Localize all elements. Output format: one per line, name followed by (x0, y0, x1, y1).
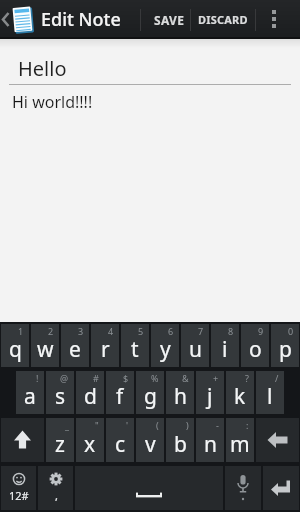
button[interactable]: k (226, 371, 254, 414)
button[interactable]: d (76, 371, 104, 414)
staticText: 7 (198, 325, 204, 337)
staticText: / (275, 372, 279, 384)
staticText: i (222, 335, 228, 364)
staticText: ) (186, 419, 189, 431)
staticText: SAVE (154, 12, 185, 28)
staticText: + (213, 372, 219, 384)
staticText: b (174, 430, 187, 459)
button[interactable]: 12# (1, 466, 36, 510)
button[interactable]: DISCARD (191, 0, 255, 39)
button[interactable]: , (38, 466, 73, 510)
staticText: g (144, 382, 157, 411)
staticText: _ (65, 419, 69, 431)
button[interactable]: o (241, 324, 269, 367)
staticText: @ (60, 372, 69, 384)
staticText: s (55, 382, 66, 411)
button[interactable] (256, 0, 300, 39)
staticText: j (207, 382, 213, 411)
staticText: ( (156, 419, 159, 431)
staticText: 5 (138, 325, 144, 337)
button[interactable]: y (151, 324, 179, 367)
staticText: DISCARD (198, 12, 248, 27)
button[interactable]: q (1, 324, 29, 367)
staticText: v (145, 430, 156, 459)
button[interactable]: j (196, 371, 224, 414)
staticText: r (101, 335, 110, 364)
button[interactable]: p (271, 324, 299, 367)
button[interactable]: g (136, 371, 164, 414)
staticText: Hi world!!!! (12, 91, 93, 113)
staticText: 1 (18, 325, 24, 337)
staticText: , (55, 488, 58, 503)
staticText: h (174, 382, 187, 411)
button[interactable] (1, 418, 44, 462)
staticText: f (116, 382, 124, 411)
button[interactable] (256, 418, 299, 462)
staticText: d (84, 382, 97, 411)
button[interactable]: z (46, 418, 74, 462)
button[interactable]: i (211, 324, 239, 367)
staticText: w (37, 335, 54, 364)
staticText: z (55, 430, 65, 459)
staticText: Edit Note (41, 7, 121, 32)
button[interactable]: x (76, 418, 104, 462)
button[interactable] (0, 0, 11, 39)
staticText: 8 (228, 325, 234, 337)
staticText: 12# (9, 488, 29, 503)
staticText: $ (123, 372, 129, 384)
staticText: Hello (18, 55, 67, 82)
staticText: # (93, 372, 99, 384)
staticText: - (216, 419, 219, 431)
staticText: % (151, 372, 159, 384)
staticText: n (204, 430, 217, 459)
staticText: e (69, 335, 81, 364)
staticText: 0 (288, 325, 294, 337)
staticText: 2 (48, 325, 54, 337)
staticText: x (84, 430, 96, 459)
button[interactable]: c (106, 418, 134, 462)
button[interactable] (263, 466, 299, 510)
button[interactable]: s (46, 371, 74, 414)
button[interactable] (75, 466, 223, 510)
button[interactable]: h (166, 371, 194, 414)
button[interactable]: f (106, 371, 134, 414)
staticText: c (115, 430, 126, 459)
button[interactable]: m (226, 418, 254, 462)
button[interactable]: w (31, 324, 59, 367)
staticText: : (246, 419, 249, 431)
staticText: 9 (258, 325, 264, 337)
staticText: u (189, 335, 202, 364)
button[interactable]: t (121, 324, 149, 367)
staticText: " (95, 419, 99, 431)
staticText: m (230, 430, 250, 459)
staticText: y (160, 335, 171, 364)
staticText: k (234, 382, 246, 411)
button[interactable]: l (256, 371, 284, 414)
staticText: o (249, 335, 262, 364)
staticText: ? (245, 372, 249, 384)
staticText: t (131, 335, 139, 364)
button[interactable] (225, 466, 261, 510)
button[interactable]: SAVE (141, 0, 190, 39)
staticText: 3 (78, 325, 84, 337)
button[interactable]: a (16, 371, 44, 414)
staticText: 6 (168, 325, 174, 337)
staticText: q (9, 335, 22, 364)
staticText: p (279, 335, 292, 364)
button[interactable]: r (91, 324, 119, 367)
button[interactable]: b (166, 418, 194, 462)
button[interactable]: e (61, 324, 89, 367)
staticText: a (24, 382, 36, 411)
button[interactable]: v (136, 418, 164, 462)
staticText: ' (126, 419, 129, 431)
staticText: 4 (108, 325, 114, 337)
staticText: l (267, 382, 273, 411)
button[interactable]: n (196, 418, 224, 462)
button[interactable]: u (181, 324, 209, 367)
staticText: ! (36, 372, 39, 384)
staticText: & (182, 372, 189, 384)
